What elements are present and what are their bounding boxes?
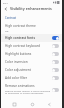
staticText: Highlight buttons (5, 52, 32, 56)
staticText: Color adjustment (5, 68, 31, 72)
button[interactable]: Add color filter (1, 74, 62, 82)
button[interactable]: Color adjustment (1, 66, 62, 74)
staticText: High contrast keyboard (5, 44, 41, 48)
staticText: Visibility enhancements (10, 6, 52, 11)
staticText: Add color filter (5, 76, 28, 80)
button[interactable]: Remove animations (1, 82, 62, 97)
button[interactable]: Recents (9, 101, 19, 108)
button[interactable]: Back (1, 4, 10, 13)
button[interactable]: High contrast keyboard (1, 42, 62, 50)
button[interactable]: High contrast theme (1, 22, 62, 34)
staticText: Contrast (5, 16, 17, 20)
staticText: Reduce screen motion if you're sensitive… (5, 89, 50, 95)
button[interactable]: Highlight buttons (1, 50, 62, 58)
staticText: Remove animations (5, 84, 35, 88)
button[interactable]: Color inversion (1, 58, 62, 66)
staticText: High contrast theme (5, 24, 36, 28)
staticText: 9:41 (3, 1, 8, 4)
button[interactable]: Home (27, 101, 37, 108)
button[interactable]: High contrast fonts (1, 34, 62, 42)
staticText: Off (5, 29, 9, 32)
button[interactable]: Back (44, 101, 54, 108)
staticText: High contrast fonts (5, 36, 35, 40)
staticText: Color inversion (5, 60, 28, 64)
